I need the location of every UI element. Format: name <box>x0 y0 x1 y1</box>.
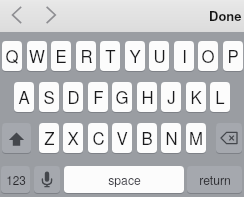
button[interactable]: 123 <box>1 166 30 193</box>
staticText: return <box>199 171 231 188</box>
button[interactable]: U <box>149 41 169 71</box>
staticText: I <box>182 44 187 68</box>
staticText: T <box>105 44 116 68</box>
staticText: B <box>141 126 153 150</box>
button[interactable]: R <box>76 41 96 71</box>
staticText: space <box>108 171 141 188</box>
staticText: 123 <box>6 171 26 188</box>
button[interactable]: H <box>137 82 157 112</box>
staticText: Y <box>129 44 141 68</box>
button[interactable]: V <box>112 123 132 153</box>
button[interactable]: Next field <box>38 2 66 30</box>
button[interactable]: Done <box>205 3 244 27</box>
button[interactable]: P <box>223 41 243 71</box>
staticText: K <box>190 85 202 109</box>
staticText: W <box>29 44 45 68</box>
staticText: D <box>67 85 80 109</box>
button[interactable]: Dictate <box>34 166 60 193</box>
button[interactable]: O <box>198 41 218 71</box>
staticText: F <box>93 85 104 109</box>
button[interactable]: C <box>88 123 108 153</box>
staticText: P <box>227 44 239 68</box>
staticText: J <box>167 85 176 109</box>
staticText: H <box>141 85 154 109</box>
staticText: G <box>115 85 129 109</box>
button[interactable]: D <box>63 82 83 112</box>
staticText: M <box>189 126 203 150</box>
staticText: V <box>116 126 128 150</box>
button[interactable]: L <box>210 82 230 112</box>
staticText: A <box>18 85 30 109</box>
button[interactable]: N <box>161 123 181 153</box>
button[interactable]: F <box>88 82 108 112</box>
staticText: Done <box>209 6 242 25</box>
staticText: E <box>55 44 67 68</box>
staticText: S <box>43 85 55 109</box>
button[interactable]: T <box>100 41 120 71</box>
button[interactable]: Q <box>2 41 22 71</box>
button[interactable]: S <box>39 82 59 112</box>
button[interactable]: Backspace <box>216 123 242 153</box>
button[interactable]: Z <box>39 123 59 153</box>
button[interactable]: M <box>186 123 206 153</box>
staticText: N <box>165 126 178 150</box>
staticText: Q <box>5 44 19 68</box>
staticText: O <box>201 44 215 68</box>
button[interactable]: G <box>112 82 132 112</box>
button[interactable]: Y <box>125 41 145 71</box>
button[interactable]: K <box>186 82 206 112</box>
button[interactable]: B <box>137 123 157 153</box>
button[interactable]: J <box>161 82 181 112</box>
staticText: Z <box>44 126 55 150</box>
staticText: C <box>92 126 105 150</box>
button[interactable]: space <box>64 166 184 193</box>
button[interactable]: Shift <box>2 123 31 153</box>
button[interactable]: I <box>174 41 194 71</box>
button[interactable]: return <box>187 166 242 193</box>
button[interactable]: E <box>51 41 71 71</box>
staticText: L <box>215 85 225 109</box>
button[interactable]: W <box>27 41 47 71</box>
button[interactable]: A <box>14 82 34 112</box>
staticText: R <box>80 44 93 68</box>
button[interactable]: X <box>63 123 83 153</box>
staticText: U <box>153 44 166 68</box>
button[interactable]: Previous field <box>4 2 32 30</box>
staticText: X <box>67 126 79 150</box>
